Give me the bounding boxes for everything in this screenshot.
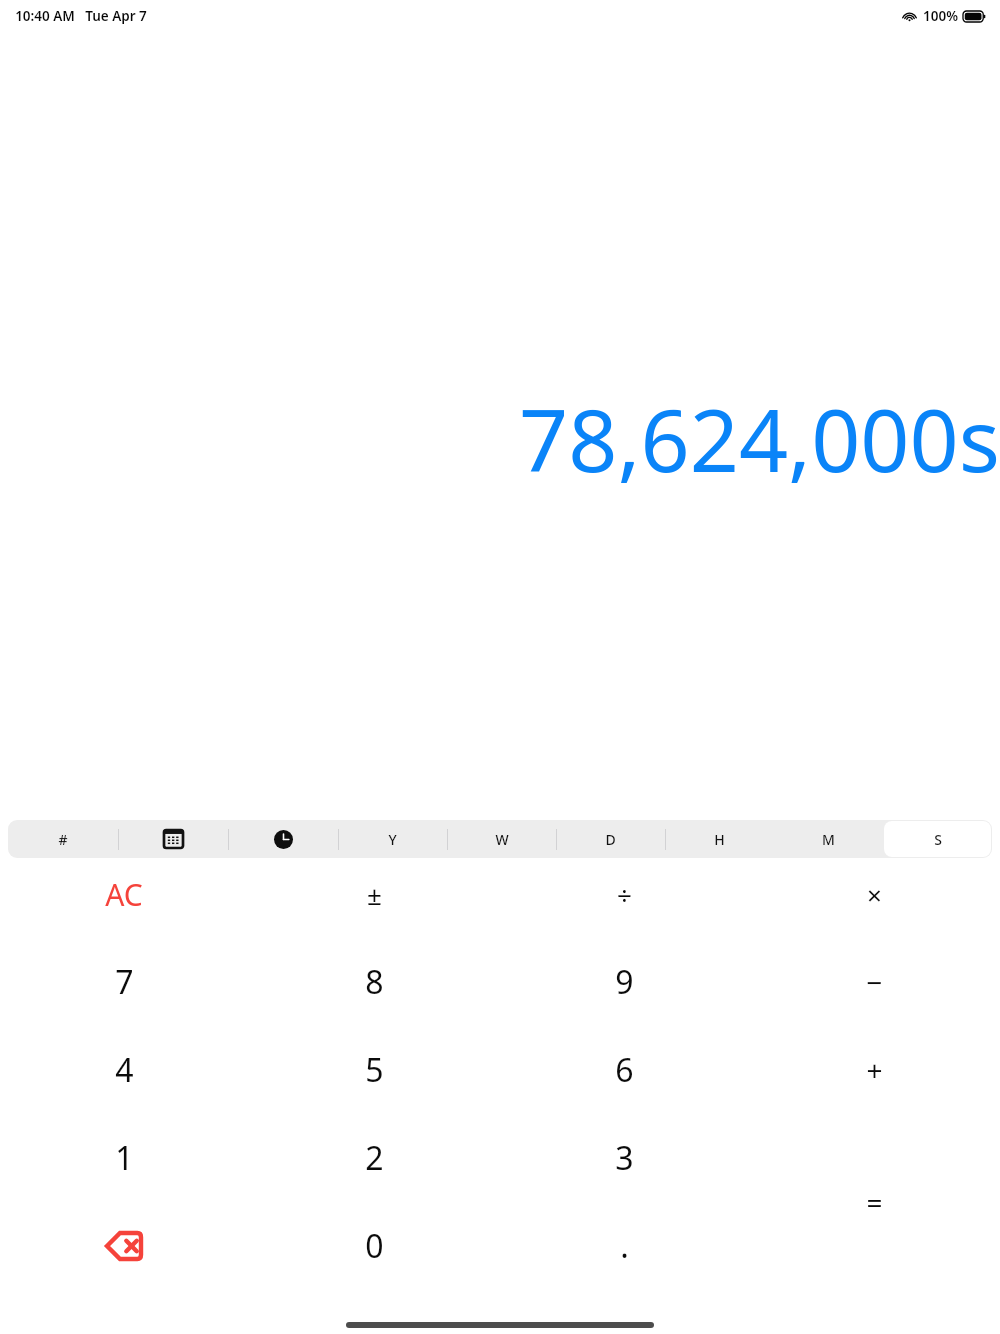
staticText: 100% bbox=[923, 7, 958, 25]
staticText: W bbox=[495, 830, 509, 849]
button[interactable]: 1 bbox=[0, 1114, 249, 1202]
staticText: − bbox=[866, 963, 883, 1001]
button[interactable]: 0 bbox=[249, 1202, 499, 1290]
staticText: 1 bbox=[115, 1136, 134, 1180]
staticText: . bbox=[620, 1224, 629, 1268]
staticText: 0 bbox=[365, 1224, 384, 1268]
staticText: 10:40 AM bbox=[15, 7, 75, 25]
button[interactable]: ÷ bbox=[499, 850, 749, 938]
staticText: 9 bbox=[615, 960, 634, 1004]
staticText: 5 bbox=[365, 1048, 384, 1092]
staticText: 78,624,000s bbox=[519, 380, 1000, 497]
button[interactable]: S bbox=[883, 820, 992, 858]
button[interactable]: 2 bbox=[249, 1114, 499, 1202]
staticText: 8 bbox=[365, 960, 384, 1004]
button[interactable]: W bbox=[447, 820, 556, 858]
staticText: D bbox=[605, 830, 616, 849]
staticText: 2 bbox=[365, 1136, 384, 1180]
button[interactable]: 9 bbox=[499, 938, 749, 1026]
button[interactable]: 8 bbox=[249, 938, 499, 1026]
button[interactable]: + bbox=[749, 1026, 999, 1114]
button[interactable]: 3 bbox=[499, 1114, 749, 1202]
button[interactable]: 5 bbox=[249, 1026, 499, 1114]
button[interactable]: Y bbox=[338, 820, 447, 858]
staticText: 7 bbox=[115, 960, 134, 1004]
staticText: Tue Apr 7 bbox=[85, 7, 147, 25]
button[interactable]: ± bbox=[249, 850, 499, 938]
staticText: H bbox=[714, 830, 725, 849]
staticText: ÷ bbox=[617, 877, 632, 912]
button[interactable]: 4 bbox=[0, 1026, 249, 1114]
staticText: ± bbox=[367, 877, 382, 912]
staticText: 6 bbox=[615, 1048, 634, 1092]
staticText: + bbox=[866, 1051, 883, 1089]
button[interactable]: − bbox=[749, 938, 999, 1026]
staticText: 4 bbox=[115, 1048, 134, 1092]
button[interactable]: Time bbox=[228, 820, 338, 858]
button[interactable]: Backspace bbox=[0, 1202, 249, 1290]
staticText: 3 bbox=[615, 1136, 634, 1180]
staticText: Y bbox=[388, 830, 397, 849]
button[interactable]: Equals bbox=[749, 1114, 999, 1290]
staticText: = bbox=[866, 1183, 883, 1221]
staticText: S bbox=[934, 830, 942, 849]
button[interactable]: 6 bbox=[499, 1026, 749, 1114]
button[interactable]: Date bbox=[118, 820, 228, 858]
staticText: M bbox=[822, 830, 835, 849]
staticText: AC bbox=[105, 874, 143, 915]
button[interactable]: 7 bbox=[0, 938, 249, 1026]
button[interactable]: D bbox=[556, 820, 665, 858]
button[interactable]: AC bbox=[0, 850, 249, 938]
button[interactable]: . bbox=[499, 1202, 749, 1290]
staticText: × bbox=[867, 877, 882, 912]
staticText: # bbox=[58, 830, 68, 849]
button[interactable]: × bbox=[749, 850, 999, 938]
button[interactable]: # bbox=[8, 820, 118, 858]
button[interactable]: H bbox=[665, 820, 774, 858]
button[interactable]: M bbox=[774, 820, 883, 858]
